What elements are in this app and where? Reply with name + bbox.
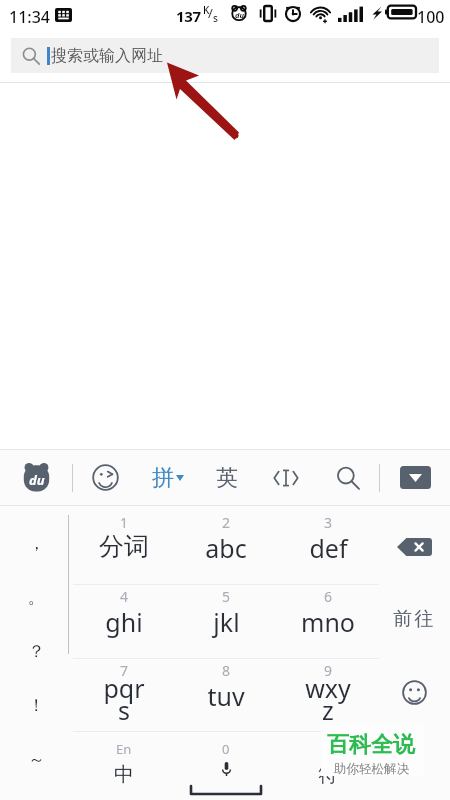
staticText: s xyxy=(213,11,218,25)
staticText: 2 xyxy=(222,513,231,532)
button[interactable]: Space xyxy=(175,732,277,800)
button[interactable]: Hide keyboard xyxy=(400,450,431,505)
staticText: abc xyxy=(205,531,247,565)
button[interactable]: Emoji xyxy=(379,655,450,800)
button[interactable]: 6 xyxy=(277,585,379,658)
staticText: jkl xyxy=(213,605,240,639)
staticText: 拼 xyxy=(152,464,174,492)
staticText: ！ xyxy=(28,695,45,716)
staticText: 137 xyxy=(176,6,201,26)
button[interactable]: 前往 xyxy=(379,583,450,655)
button[interactable]: 3 xyxy=(277,511,379,584)
staticText: ～ xyxy=(28,749,45,770)
staticText: 3 xyxy=(324,513,333,532)
staticText: 5 xyxy=(222,587,231,606)
button[interactable]: ～ xyxy=(0,732,73,786)
staticText: 。 xyxy=(28,587,45,608)
button[interactable]: # xyxy=(277,732,379,800)
staticText: du xyxy=(235,10,244,20)
staticText: 9 xyxy=(324,661,333,680)
staticText: def xyxy=(309,531,348,565)
staticText: En xyxy=(116,740,132,758)
staticText: 8 xyxy=(222,661,231,680)
staticText: pqr xyxy=(103,671,145,705)
button[interactable]: Move cursor xyxy=(255,450,317,505)
button[interactable]: En xyxy=(73,732,175,800)
button[interactable]: 7 xyxy=(73,659,175,731)
staticText: z xyxy=(322,693,334,727)
button[interactable]: 拼 xyxy=(137,450,199,505)
staticText: ghi xyxy=(105,605,143,639)
button[interactable]: 。 xyxy=(0,570,73,624)
staticText: 助你轻松解决 xyxy=(334,761,409,777)
button[interactable]: Emoji xyxy=(73,450,137,505)
staticText: wxy xyxy=(305,671,351,705)
button[interactable]: 5 xyxy=(175,585,277,658)
staticText: 4 xyxy=(120,587,129,606)
staticText: 中 xyxy=(114,762,134,787)
button[interactable]: 8 xyxy=(175,659,277,731)
button[interactable]: 9 xyxy=(277,659,379,731)
staticText: 搜索或输入网址 xyxy=(51,46,163,66)
staticText: / xyxy=(208,4,213,22)
button[interactable]: ， xyxy=(0,517,73,570)
staticText: 分词 xyxy=(99,531,149,562)
staticText: 0 xyxy=(222,740,230,758)
staticText: 6 xyxy=(324,587,333,606)
staticText: 100 xyxy=(417,6,445,28)
staticText: tuv xyxy=(207,679,245,713)
staticText: mno xyxy=(301,605,355,639)
button[interactable]: Baidu input method xyxy=(0,450,72,505)
staticText: 百科全说 xyxy=(327,731,415,759)
staticText: 7 xyxy=(120,661,129,680)
button[interactable]: 1 xyxy=(73,511,175,584)
staticText: ？ xyxy=(28,641,45,662)
staticText: du xyxy=(29,471,45,489)
staticText: # xyxy=(324,740,333,758)
button[interactable]: 英 xyxy=(199,450,255,505)
staticText: 符 xyxy=(318,762,338,787)
staticText: 1 xyxy=(120,513,129,532)
button[interactable]: ？ xyxy=(0,624,73,678)
button[interactable]: 搜索或输入网址 xyxy=(11,38,439,73)
staticText: s xyxy=(118,693,130,727)
staticText: 前往 xyxy=(393,607,436,631)
button[interactable]: 2 xyxy=(175,511,277,584)
button[interactable]: 4 xyxy=(73,585,175,658)
button[interactable]: ！ xyxy=(0,678,73,732)
staticText: 英 xyxy=(216,464,238,492)
staticText: 11:34 xyxy=(9,6,50,28)
staticText: K xyxy=(203,3,210,17)
staticText: ， xyxy=(28,533,45,554)
button[interactable]: Search xyxy=(317,450,379,505)
button[interactable]: Backspace xyxy=(379,511,450,583)
